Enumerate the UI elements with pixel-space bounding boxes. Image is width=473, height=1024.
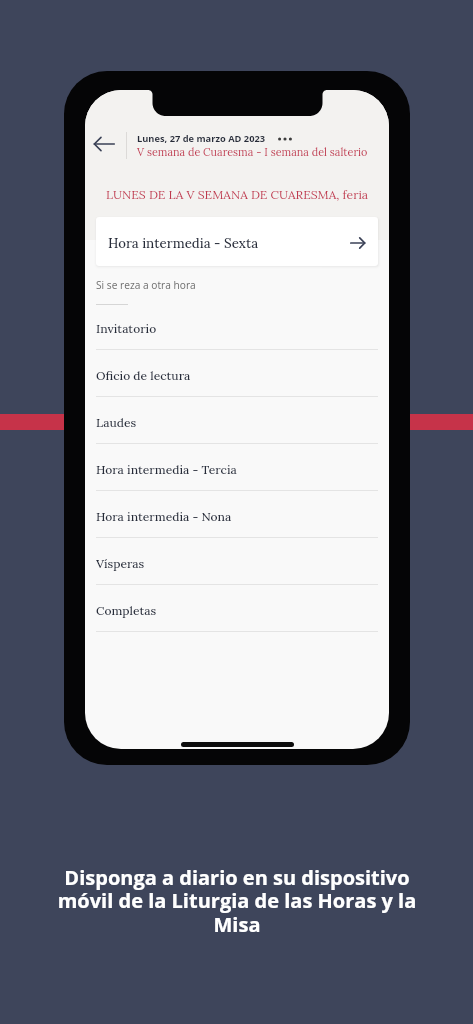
button[interactable]: Hora intermedia - Tercia [85,444,389,491]
button[interactable]: Vísperas [85,538,389,585]
button[interactable]: Hora intermedia - Nona [85,491,389,538]
button[interactable]: Oficio de lectura [85,350,389,397]
button[interactable]: Back [90,130,118,158]
staticText: Laudes [96,415,137,430]
staticText: Invitatorio [96,321,157,336]
button[interactable]: Completas [85,585,389,632]
button[interactable]: Hora intermedia - Sexta [96,217,378,266]
staticText: Si se reza a otra hora [96,278,196,292]
staticText: Hora intermedia - Sexta [108,235,259,252]
staticText: Vísperas [96,556,145,571]
staticText: Completas [96,603,157,618]
staticText: LUNES DE LA V SEMANA DE CUARESMA, feria [106,187,369,203]
button[interactable]: Invitatorio [85,303,389,350]
staticText: Oficio de lectura [96,368,191,383]
staticText: Lunes, 27 de marzo AD 2023 [137,132,266,145]
staticText: Disponga a diario en su dispositivo móvi… [48,864,426,938]
staticText: Hora intermedia - Tercia [96,462,237,477]
button[interactable]: More options [276,130,294,148]
staticText: Hora intermedia - Nona [96,509,232,524]
staticText: V semana de Cuaresma - I semana del salt… [137,145,368,159]
button[interactable]: Laudes [85,397,389,444]
